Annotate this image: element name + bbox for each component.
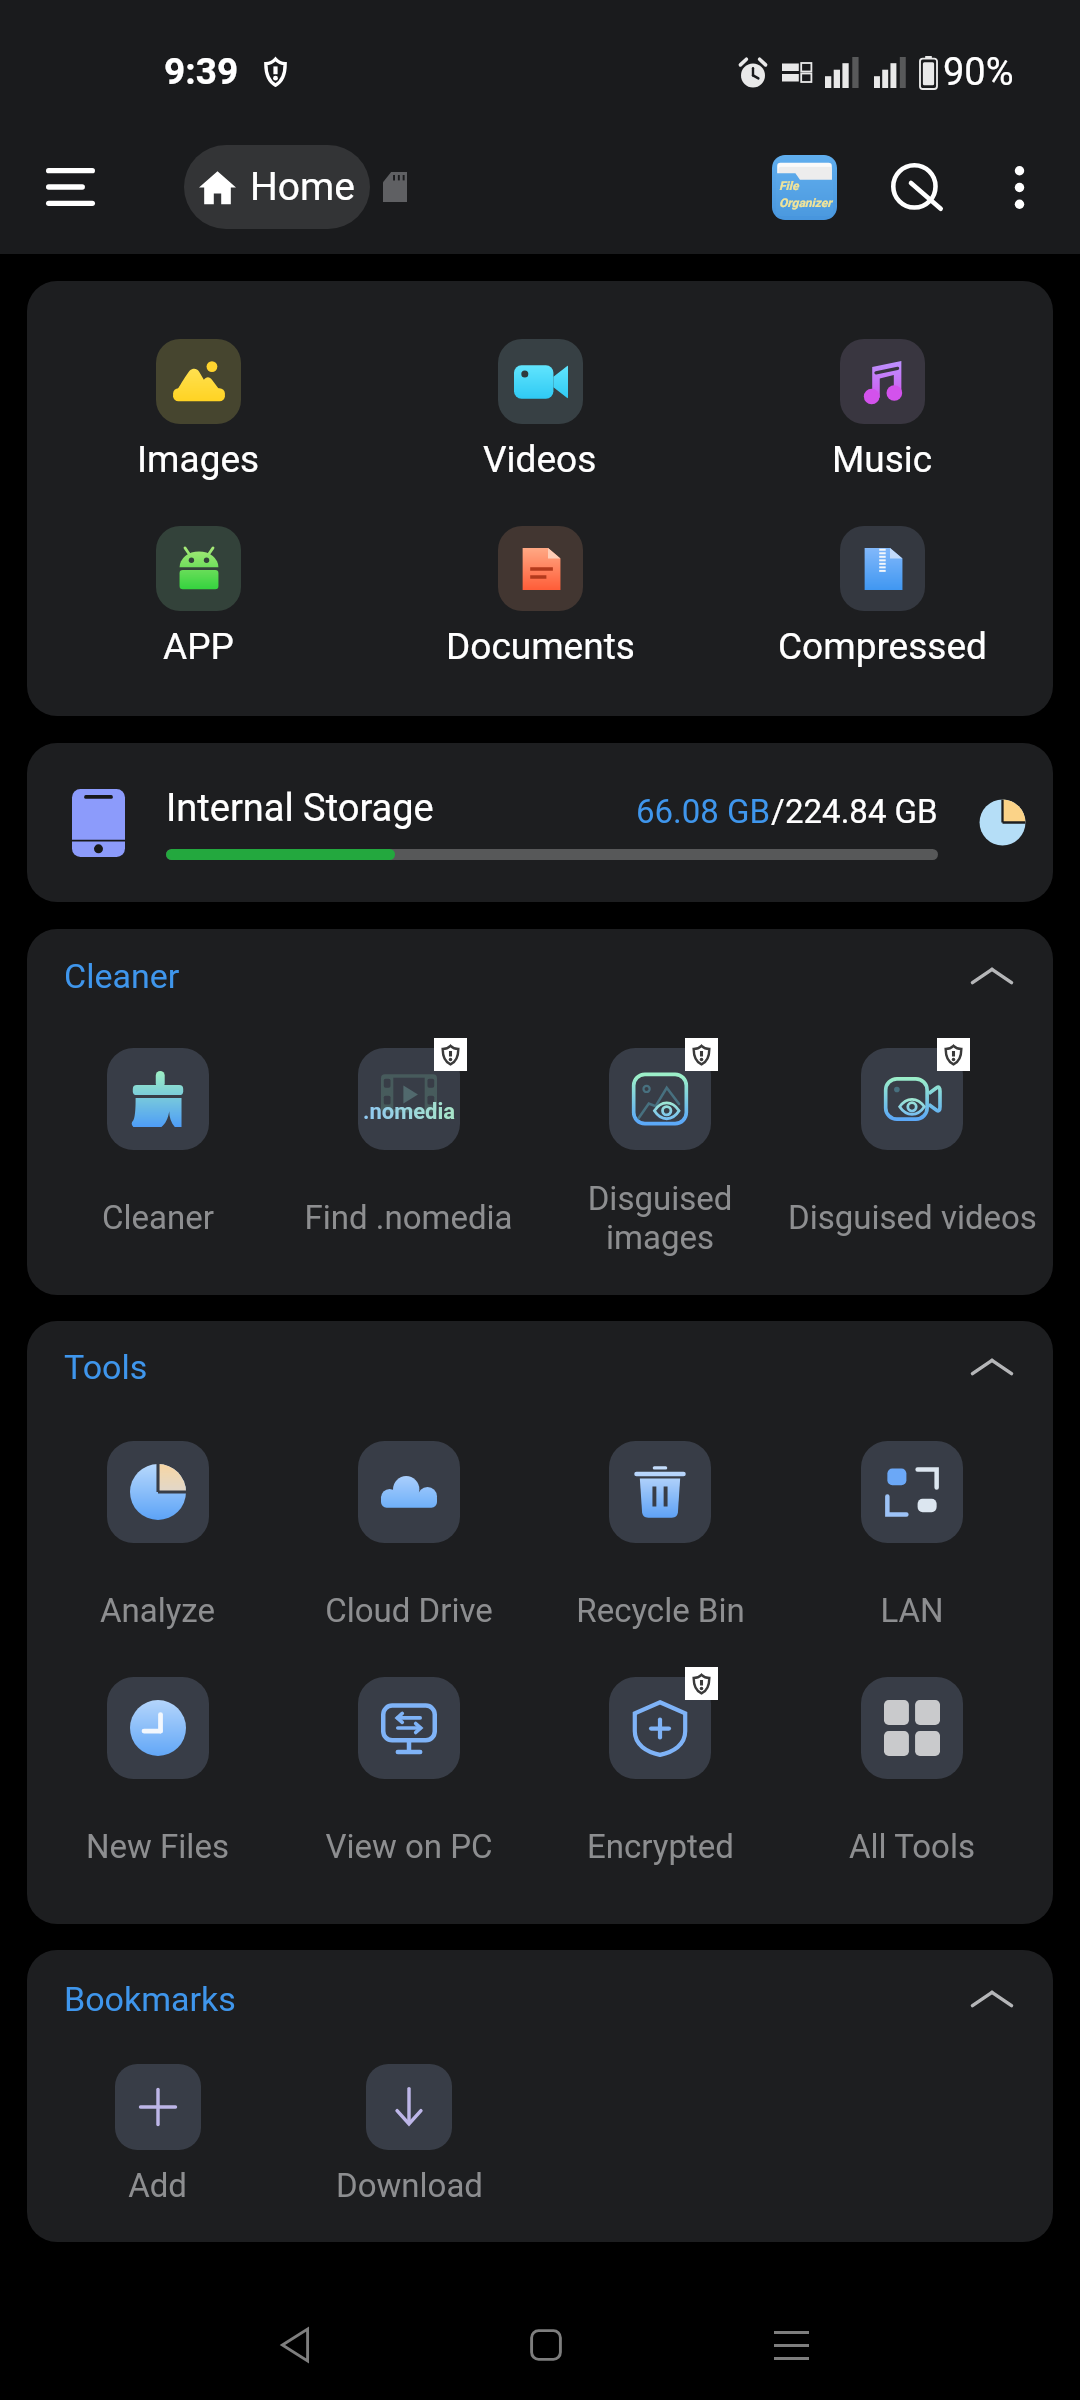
button[interactable]: Analyze [32, 1441, 283, 1650]
button[interactable]: Cleaner [27, 943, 1053, 1009]
button[interactable]: All Tools [786, 1677, 1038, 1886]
button[interactable]: Videos [369, 339, 711, 481]
staticText: 90% [943, 50, 1014, 95]
button[interactable]: Back [214, 2260, 376, 2400]
button[interactable]: Internal Storage [27, 743, 1053, 902]
button[interactable]: Search [879, 149, 955, 225]
button[interactable]: Compressed [711, 526, 1053, 668]
staticText: New Files [86, 1827, 229, 1866]
staticText: Find .nomedia [304, 1198, 513, 1237]
button[interactable]: Bookmarks [27, 1966, 1053, 2032]
staticText: APP [163, 625, 234, 668]
staticText: Organizer [779, 196, 832, 210]
staticText: Images [137, 438, 260, 481]
staticText: 66.08 GB [636, 792, 771, 831]
button[interactable]: Cleaner [32, 1048, 283, 1257]
staticText: View on PC [325, 1827, 493, 1866]
button[interactable]: More options [987, 155, 1051, 219]
staticText: Recycle Bin [576, 1591, 745, 1630]
staticText: Compressed [778, 625, 987, 668]
button[interactable]: Cloud Drive [283, 1441, 534, 1650]
staticText: Internal Storage [166, 786, 434, 831]
button[interactable]: Images [27, 339, 369, 481]
button[interactable]: Recycle Bin [534, 1441, 786, 1650]
button[interactable]: Encrypted [534, 1677, 786, 1886]
button[interactable]: Music [711, 339, 1053, 481]
staticText: Home [250, 164, 355, 210]
staticText: Documents [446, 625, 635, 668]
button[interactable]: Documents [369, 526, 711, 668]
button[interactable]: Menu [26, 143, 114, 231]
staticText: Cloud Drive [325, 1591, 493, 1630]
staticText: 224.84 GB [785, 792, 938, 831]
staticText: Download [336, 2166, 483, 2205]
staticText: Bookmarks [64, 1979, 236, 2019]
button[interactable]: New Files [32, 1677, 283, 1886]
staticText: 9:39 [164, 50, 239, 93]
button[interactable]: Home [184, 145, 370, 229]
staticText: Music [832, 438, 933, 481]
staticText: / [771, 792, 785, 831]
button[interactable]: Home [465, 2260, 627, 2400]
staticText: Encrypted [587, 1827, 734, 1866]
button[interactable]: Recent apps [710, 2260, 872, 2400]
button[interactable]: LAN [786, 1441, 1038, 1650]
button[interactable]: Tools [27, 1334, 1053, 1400]
button[interactable]: Disguised videos [786, 1048, 1038, 1257]
staticText: Cleaner [64, 956, 180, 996]
button[interactable]: View on PC [283, 1677, 534, 1886]
staticText: .nomedia [363, 1099, 456, 1125]
staticText: Add [128, 2166, 187, 2205]
staticText: Disguised videos [788, 1198, 1037, 1237]
button[interactable]: File Organizer app [772, 155, 837, 220]
staticText: LAN [880, 1591, 944, 1630]
button[interactable]: APP [27, 526, 369, 668]
button[interactable]: Download [283, 2064, 535, 2220]
staticText: Disguised images [534, 1179, 786, 1257]
staticText: Videos [483, 438, 597, 481]
button[interactable]: SD card [372, 164, 418, 210]
staticText: Cleaner [102, 1198, 214, 1237]
button[interactable]: Add [32, 2064, 283, 2220]
staticText: File [779, 179, 799, 193]
button[interactable]: .nomedia [283, 1048, 534, 1257]
staticText: All Tools [849, 1827, 975, 1866]
staticText: Tools [64, 1347, 148, 1387]
staticText: Analyze [100, 1591, 215, 1630]
button[interactable]: Disguised images [534, 1048, 786, 1257]
